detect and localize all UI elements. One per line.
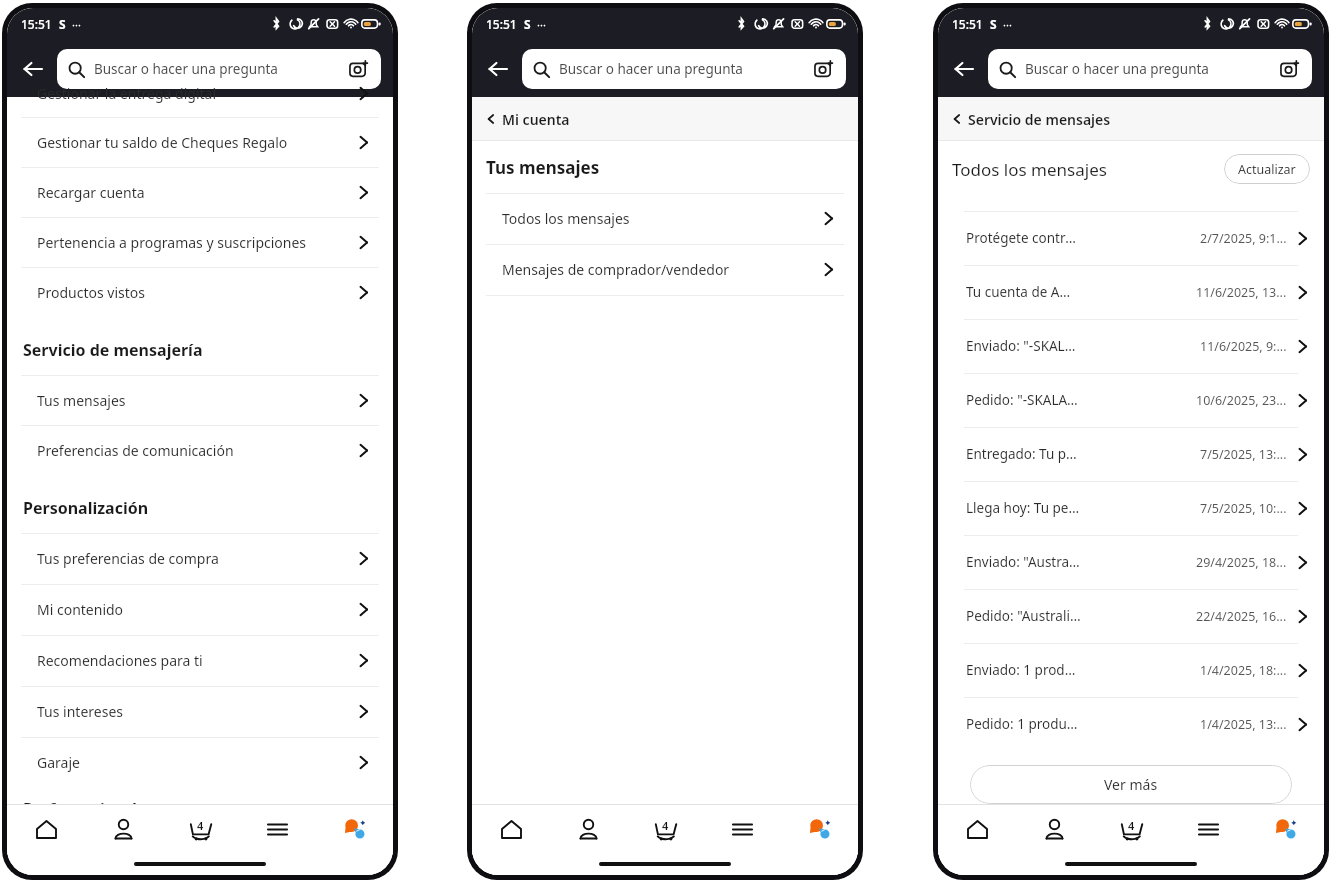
button[interactable]: Carrito bbox=[627, 805, 704, 853]
staticText: Pertenencia a programas y suscripciones bbox=[37, 233, 356, 252]
staticText: Todos los mensajes bbox=[502, 209, 821, 228]
staticText: 15:51 bbox=[21, 16, 52, 32]
staticText: S bbox=[524, 16, 531, 32]
button[interactable]: Mi contenido bbox=[7, 584, 393, 635]
staticText: Pedido: "Australian Gold Suns... bbox=[966, 607, 1081, 625]
button[interactable]: Rufus bbox=[781, 805, 858, 853]
button[interactable]: Productos vistos bbox=[7, 267, 393, 317]
button[interactable]: Buscar o hacer una pregunta bbox=[522, 49, 846, 89]
staticText: Entregado: Tu pedido de Ama... bbox=[966, 445, 1083, 463]
staticText: Ver más bbox=[1104, 775, 1158, 794]
staticText: 22/4/2025, 16... bbox=[1196, 608, 1287, 625]
button[interactable]: Rufus bbox=[1247, 805, 1324, 853]
button[interactable]: Recomendaciones para ti bbox=[7, 635, 393, 686]
button[interactable]: Tu cuenta de Amazon.es bbox=[938, 265, 1324, 319]
button[interactable]: Inicio bbox=[472, 805, 550, 853]
button[interactable]: Carrito bbox=[1093, 805, 1170, 853]
button[interactable]: Enviado: "-SKALA EXPERT-..." bbox=[938, 319, 1324, 373]
staticText: Pedido: "-SKALA EXPERT..." bbox=[966, 391, 1081, 409]
staticText: Enviado: "Australian Gold Sun... bbox=[966, 553, 1081, 571]
button[interactable]: Servicio de mensajes bbox=[938, 97, 1324, 141]
button[interactable]: Atrás bbox=[944, 49, 984, 89]
button[interactable]: Todos los mensajes bbox=[472, 193, 858, 244]
button[interactable]: Carrito bbox=[162, 805, 239, 853]
staticText: Recomendaciones para ti bbox=[37, 651, 356, 670]
staticText: Tus mensajes bbox=[37, 391, 356, 410]
staticText: Actualizar bbox=[1238, 161, 1296, 178]
staticText: Llega hoy: Tu pedido de Amaz... bbox=[966, 499, 1083, 517]
staticText: Enviado: "-SKALA EXPERT-..." bbox=[966, 337, 1083, 355]
staticText: Servicio de mensajes bbox=[968, 110, 1111, 129]
button[interactable]: Tus mensajes bbox=[7, 375, 393, 425]
button[interactable]: Rufus bbox=[316, 805, 393, 853]
staticText: 29/4/2025, 18... bbox=[1196, 554, 1287, 571]
button[interactable]: Pertenencia a programas y suscripciones bbox=[7, 217, 393, 267]
staticText: S bbox=[59, 16, 66, 32]
staticText: Buscar o hacer una pregunta bbox=[559, 60, 743, 78]
staticText: Mi cuenta bbox=[502, 110, 570, 129]
button[interactable]: Menú bbox=[704, 805, 781, 853]
staticText: 15:51 bbox=[952, 16, 983, 32]
button[interactable]: Pedido: "-SKALA EXPERT..." bbox=[938, 373, 1324, 427]
button[interactable]: Recargar cuenta bbox=[7, 167, 393, 217]
staticText: ··· bbox=[72, 17, 81, 32]
button[interactable]: Mi cuenta bbox=[472, 97, 858, 141]
button[interactable]: Inicio bbox=[938, 805, 1016, 853]
staticText: Gestionar tu saldo de Cheques Regalo bbox=[37, 133, 356, 152]
staticText: 1/4/2025, 13:... bbox=[1200, 716, 1287, 733]
button[interactable]: Buscar con la cámara bbox=[1277, 57, 1301, 81]
button[interactable]: Buscar o hacer una pregunta bbox=[57, 49, 381, 89]
button[interactable]: Pedido: "Australian Gold Suns... bbox=[938, 589, 1324, 643]
staticText: 10/6/2025, 23... bbox=[1196, 392, 1287, 409]
staticText: 11/6/2025, 13... bbox=[1196, 284, 1287, 301]
staticText: Mensajes de comprador/vendedor bbox=[502, 260, 821, 279]
button[interactable]: Cuenta bbox=[550, 805, 627, 853]
staticText: Servicio de mensajería bbox=[23, 339, 203, 361]
button[interactable]: Garaje bbox=[7, 737, 393, 788]
staticText: Recargar cuenta bbox=[37, 183, 356, 202]
button[interactable]: Entregado: Tu pedido de Ama... bbox=[938, 427, 1324, 481]
staticText: 7/5/2025, 10:... bbox=[1200, 500, 1287, 517]
button[interactable]: Inicio bbox=[7, 805, 85, 853]
staticText: Tu cuenta de Amazon.es bbox=[966, 283, 1081, 301]
button[interactable]: Preferencias de comunicación bbox=[7, 425, 393, 475]
button[interactable]: Llega hoy: Tu pedido de Amaz... bbox=[938, 481, 1324, 535]
button[interactable]: Buscar con la cámara bbox=[811, 57, 835, 81]
staticText: Pedido: 1 producto bbox=[966, 715, 1083, 733]
button[interactable]: Buscar con la cámara bbox=[346, 57, 370, 81]
staticText: Tus preferencias de compra bbox=[37, 549, 356, 568]
button[interactable]: Actualizar bbox=[1224, 154, 1310, 184]
staticText: 4 bbox=[662, 818, 669, 833]
staticText: Preferencias de comunicación bbox=[37, 441, 356, 460]
staticText: Personalización bbox=[23, 497, 149, 519]
button[interactable]: Buscar o hacer una pregunta bbox=[988, 49, 1312, 89]
staticText: ··· bbox=[537, 17, 546, 32]
button[interactable]: Protégete contra las estafas bbox=[938, 211, 1324, 265]
button[interactable]: Gestionar tu saldo de Cheques Regalo bbox=[7, 117, 393, 167]
button[interactable]: Enviado: 1 producto bbox=[938, 643, 1324, 697]
staticText: 1/4/2025, 18:... bbox=[1200, 662, 1287, 679]
button[interactable]: Atrás bbox=[478, 49, 518, 89]
staticText: Protégete contra las estafas bbox=[966, 229, 1083, 247]
button[interactable]: Menú bbox=[1170, 805, 1247, 853]
button[interactable]: Cuenta bbox=[85, 805, 162, 853]
staticText: 4 bbox=[197, 818, 204, 833]
button[interactable]: Cuenta bbox=[1016, 805, 1093, 853]
button[interactable]: Atrás bbox=[13, 49, 53, 89]
staticText: Tus intereses bbox=[37, 702, 356, 721]
staticText: Buscar o hacer una pregunta bbox=[1025, 60, 1209, 78]
staticText: 11/6/2025, 9:... bbox=[1200, 338, 1287, 355]
button[interactable]: Enviado: "Australian Gold Sun... bbox=[938, 535, 1324, 589]
staticText: S bbox=[990, 16, 997, 32]
staticText: Productos vistos bbox=[37, 283, 356, 302]
button[interactable]: Tus preferencias de compra bbox=[7, 533, 393, 584]
button[interactable]: Pedido: 1 producto bbox=[938, 697, 1324, 751]
staticText: Todos los mensajes bbox=[952, 158, 1107, 181]
button[interactable]: Tus intereses bbox=[7, 686, 393, 737]
button[interactable]: Mensajes de comprador/vendedor bbox=[472, 244, 858, 295]
staticText: Preferencias de app bbox=[23, 798, 181, 804]
button[interactable]: Menú bbox=[239, 805, 316, 853]
staticText: 2/7/2025, 9:1... bbox=[1200, 230, 1287, 247]
button[interactable]: Ver más bbox=[970, 765, 1292, 804]
staticText: Garaje bbox=[37, 753, 356, 772]
